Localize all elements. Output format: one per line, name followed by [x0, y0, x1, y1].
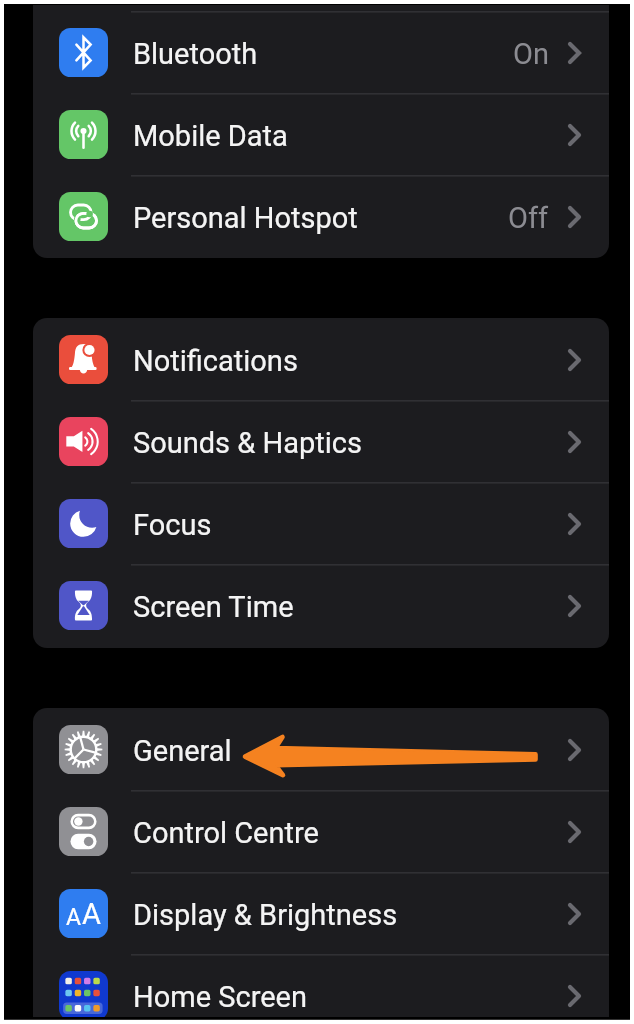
staticText: Focus	[133, 508, 212, 542]
button[interactable]: General	[33, 708, 609, 790]
staticText: A	[66, 904, 82, 931]
staticText: Sounds & Haptics	[133, 426, 362, 460]
button[interactable]: A	[33, 872, 609, 954]
staticText: On	[513, 37, 549, 71]
staticText: Off	[508, 201, 549, 235]
staticText: Home Screen	[133, 980, 307, 1014]
staticText: Screen Time	[133, 590, 294, 624]
staticText: Bluetooth	[133, 37, 258, 71]
staticText: Control Centre	[133, 816, 319, 850]
button[interactable]: Focus	[33, 482, 609, 564]
button[interactable]: Home Screen	[33, 954, 609, 1024]
button[interactable]: Sounds & Haptics	[33, 400, 609, 482]
staticText: Mobile Data	[133, 119, 288, 153]
button[interactable]: Mobile Data	[33, 93, 609, 175]
button[interactable]: Screen Time	[33, 564, 609, 646]
button[interactable]: Notifications	[33, 318, 609, 400]
button[interactable]: Bluetooth	[33, 11, 609, 93]
staticText: Personal Hotspot	[133, 201, 358, 235]
staticText: General	[133, 734, 232, 768]
staticText: Display & Brightness	[133, 898, 398, 932]
staticText: Notifications	[133, 344, 298, 378]
button[interactable]: Personal Hotspot	[33, 175, 609, 257]
staticText: A	[82, 897, 101, 931]
button[interactable]: Control Centre	[33, 790, 609, 872]
